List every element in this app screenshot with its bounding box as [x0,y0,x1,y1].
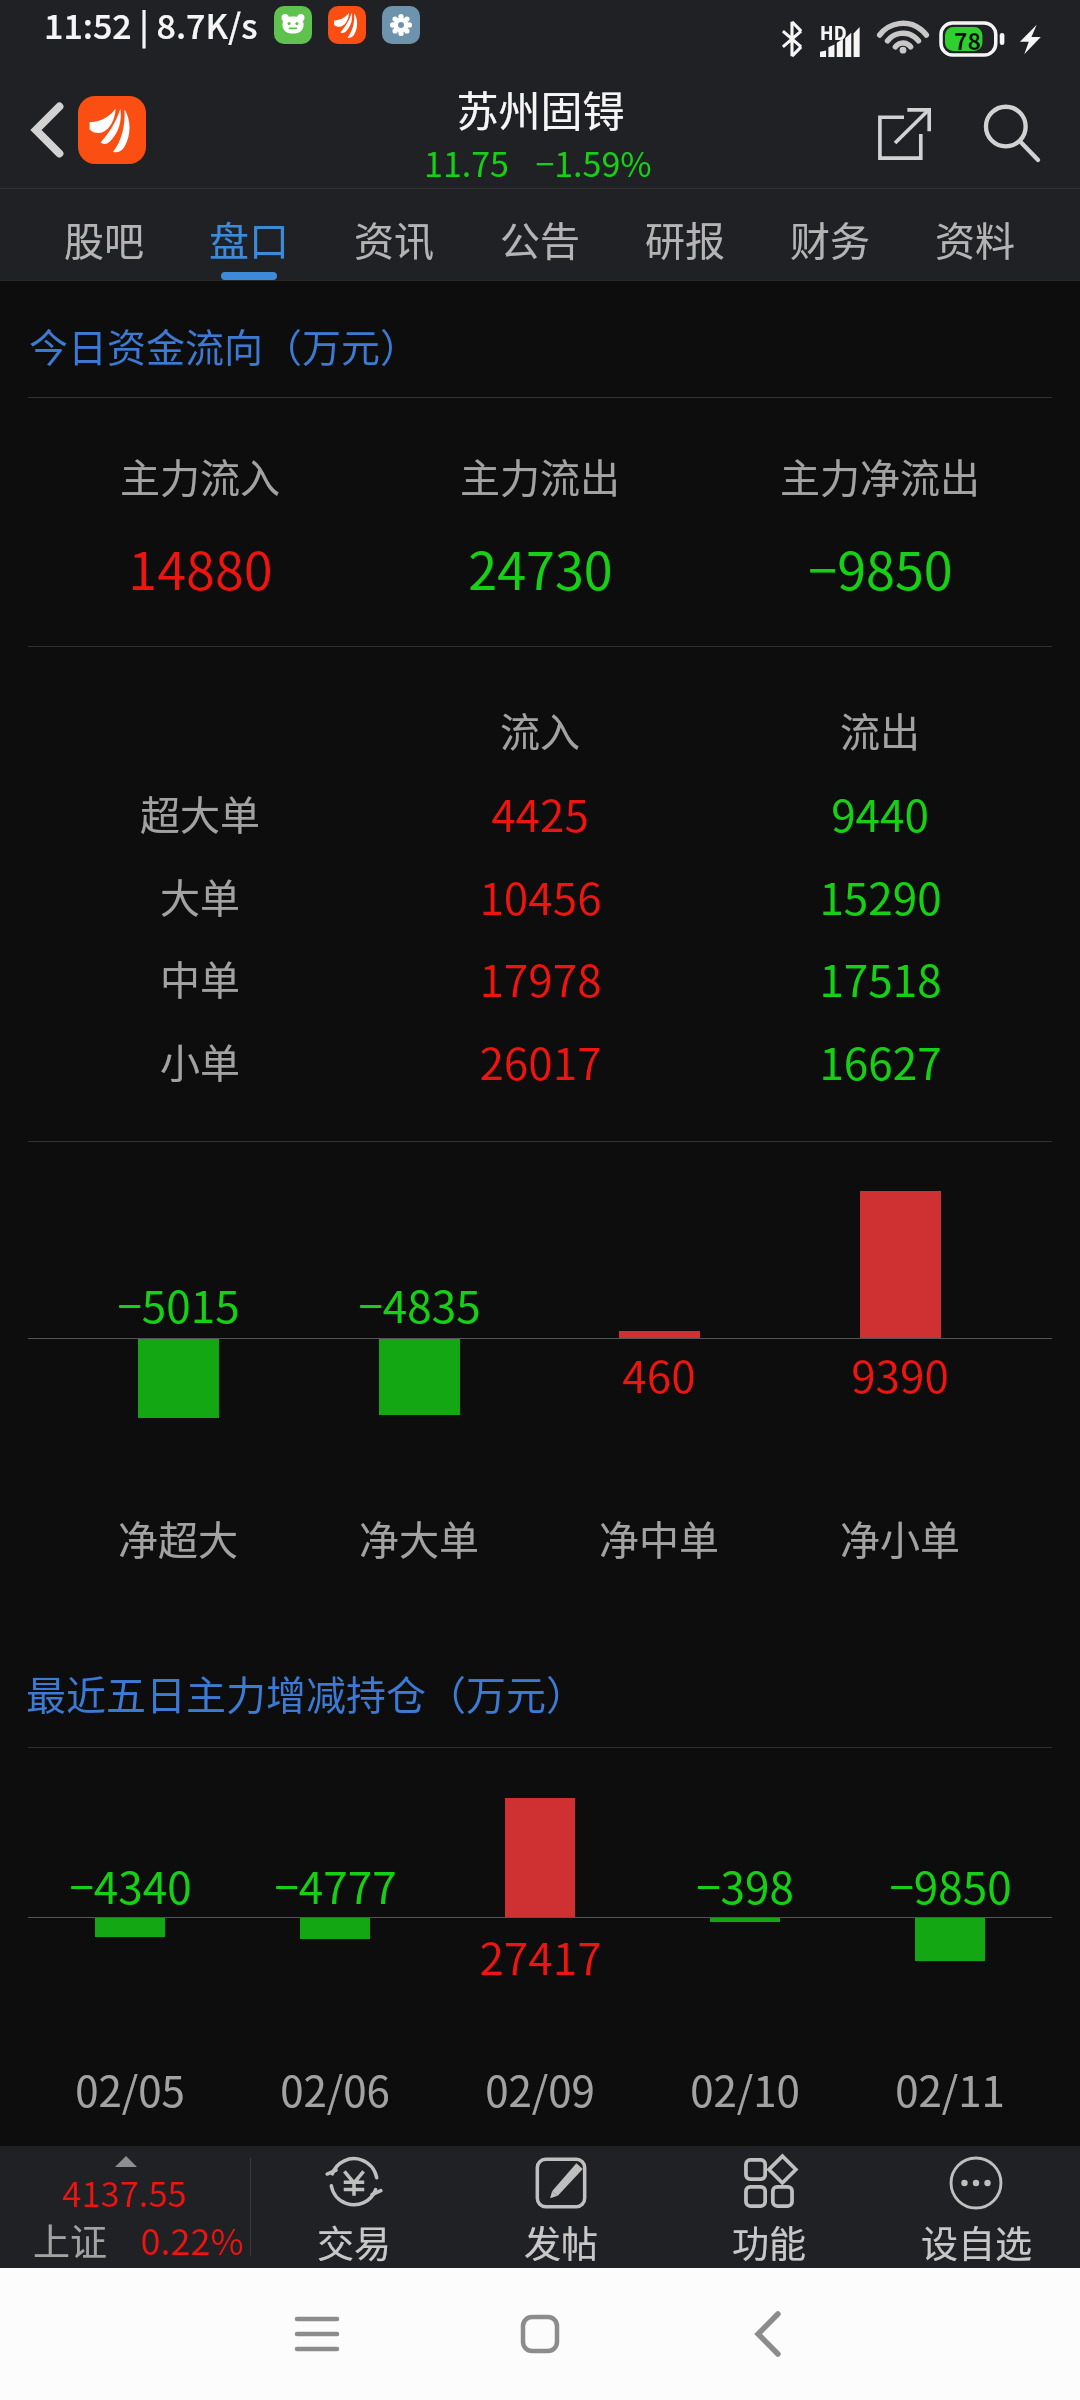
staticText: 02/05 [75,2058,185,2118]
button[interactable]: 公告 [468,189,612,280]
staticText: 净大单 [359,1509,479,1567]
staticText: 盘口 [209,210,289,268]
staticText: HD [820,19,847,45]
staticText: 02/10 [690,2058,800,2118]
staticText: 小单 [160,1032,240,1090]
staticText: 资讯 [354,210,434,268]
staticText: 中单 [160,949,240,1007]
staticText: 流入 [500,701,580,759]
button[interactable]: Back [723,2268,813,2400]
staticText: −4340 [69,1853,192,1916]
staticText: 上证 [33,2213,107,2266]
staticText: 今日资金流向（万元） [29,317,420,373]
staticText: −4777 [274,1853,397,1916]
staticText: 02/11 [895,2058,1005,2118]
staticText: 净超大 [118,1509,238,1567]
staticText: 10456 [479,864,602,927]
staticText: 财务 [790,210,870,268]
staticText: 最近五日主力增减持仓（万元） [26,1664,586,1722]
staticText: 设自选 [921,2215,1032,2268]
staticText: 苏州固锝 [456,78,625,138]
staticText: 9440 [831,781,929,844]
staticText: 11.75 [424,138,509,187]
staticText: −5015 [117,1272,240,1335]
staticText: 0.22% [140,2213,244,2265]
staticText: −9850 [808,530,953,605]
button[interactable]: Recents [272,2268,362,2400]
staticText: 9390 [851,1342,949,1405]
staticText: 24730 [468,530,613,605]
staticText: 11:52 | 8.7K/s [44,0,258,49]
staticText: 股吧 [64,210,144,268]
button[interactable]: 盘口 [177,189,321,280]
staticText: 17978 [479,946,602,1009]
staticText: 02/06 [280,2058,390,2118]
button[interactable]: 设自选 [873,2146,1079,2268]
staticText: 发帖 [524,2215,598,2268]
staticText: 主力流出 [460,447,620,505]
staticText: 4425 [491,781,589,844]
staticText: 流出 [840,701,920,759]
staticText: 78 [954,23,982,56]
button[interactable]: 4137.55 [0,2146,250,2268]
staticText: 02/09 [485,2058,595,2118]
staticText: 交易 [317,2215,391,2268]
staticText: 大单 [160,867,240,925]
button[interactable]: Back [8,90,88,170]
button[interactable]: 股吧 [32,189,176,280]
staticText: −1.59% [535,138,652,187]
button[interactable]: Search [968,90,1056,178]
button[interactable]: Eastmoney [78,96,146,164]
button[interactable]: 资讯 [322,189,466,280]
button[interactable]: 发帖 [458,2146,664,2268]
staticText: 26017 [479,1029,602,1092]
staticText: 超大单 [140,784,260,842]
staticText: 公告 [500,210,580,268]
staticText: −398 [696,1853,794,1916]
button[interactable]: 资料 [903,189,1047,280]
staticText: 14880 [128,530,273,605]
staticText: 27417 [479,1924,602,1987]
button[interactable]: 功能 [666,2146,872,2268]
staticText: 4137.55 [62,2167,187,2217]
staticText: 主力流入 [120,447,280,505]
staticText: 460 [622,1342,696,1405]
staticText: −9850 [889,1853,1012,1916]
button[interactable]: 研报 [613,189,757,280]
staticText: 研报 [645,210,725,268]
staticText: 15290 [819,864,942,927]
staticText: 资料 [935,210,1015,268]
staticText: 净小单 [840,1509,960,1567]
staticText: 净中单 [599,1509,719,1567]
button[interactable]: 交易 [251,2146,457,2268]
staticText: 主力净流出 [780,447,980,505]
staticText: 17518 [819,946,942,1009]
staticText: 功能 [732,2215,806,2268]
button[interactable]: Share [860,90,948,178]
staticText: 16627 [819,1029,942,1092]
button[interactable]: 财务 [758,189,902,280]
button[interactable]: Home [495,2268,585,2400]
staticText: −4835 [358,1272,481,1335]
